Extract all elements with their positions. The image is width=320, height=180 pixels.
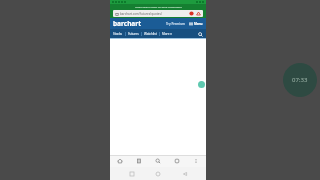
staticText: Lorem ipsum dolor sit amet consectetur: [135, 5, 182, 8]
button[interactable]: Recording timer: [283, 63, 317, 97]
button[interactable]: Stocks: [113, 32, 123, 36]
staticText: Stocks: [113, 32, 123, 36]
button[interactable]: Watchlist: [144, 32, 157, 36]
button[interactable]: Bookmarks: [135, 157, 143, 165]
staticText: 07:33: [292, 76, 308, 84]
button[interactable]: Search: [197, 31, 203, 37]
button[interactable]: Back: [180, 169, 190, 179]
button[interactable]: Futures: [128, 32, 139, 36]
button[interactable]: Tabs: [173, 157, 181, 165]
button[interactable]: barchart: [113, 19, 141, 28]
button[interactable]: barchart.com/futures/quotes/: [113, 10, 203, 17]
staticText: barchart.com/futures/quotes/: [120, 12, 163, 16]
button[interactable]: Try Premium: [166, 22, 186, 26]
button[interactable]: Search: [154, 157, 162, 165]
staticText: Menu: [194, 22, 203, 26]
button[interactable]: More options: [192, 157, 200, 165]
staticText: More ▾: [162, 32, 172, 36]
staticText: Watchlist: [144, 32, 157, 36]
button[interactable]: Home: [116, 157, 124, 165]
staticText: barchart: [113, 19, 141, 28]
staticText: Try Premium: [166, 22, 186, 26]
staticText: Futures: [128, 32, 139, 36]
button[interactable]: More ▾: [162, 32, 172, 36]
button[interactable]: Home: [153, 169, 163, 179]
button[interactable]: Menu: [189, 22, 203, 26]
button[interactable]: Recent apps: [127, 169, 137, 179]
